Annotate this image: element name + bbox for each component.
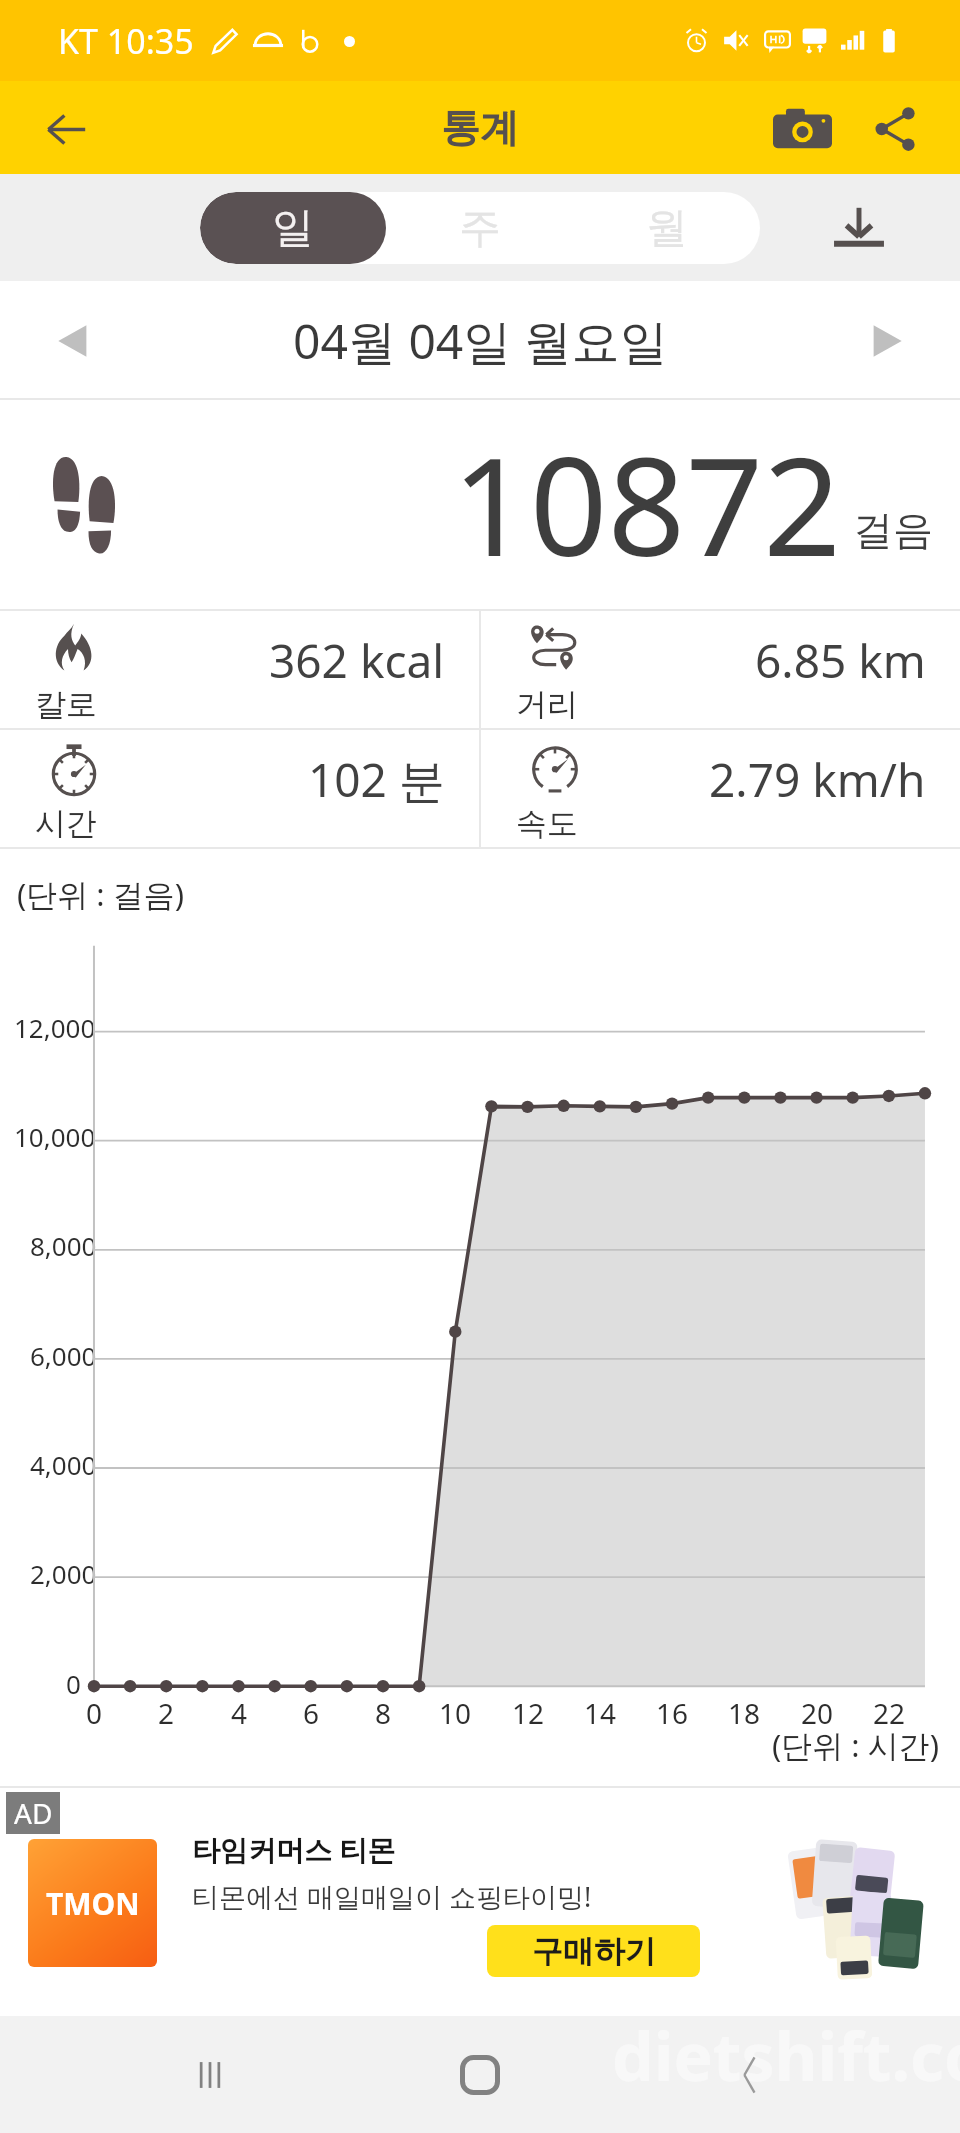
button[interactable]: Previous day (34, 303, 110, 379)
staticText: 12 (512, 1694, 545, 1732)
staticText: KT 10:35 (58, 18, 194, 64)
button[interactable]: Back (22, 85, 110, 173)
button[interactable]: 월 (573, 192, 760, 264)
staticText: 18 (728, 1694, 761, 1732)
staticText: 2 (158, 1694, 175, 1732)
staticText: 칼로 (35, 685, 97, 724)
staticText: 타임커머스 티몬 (192, 1830, 396, 1868)
staticText: dietshift.com (612, 2010, 960, 2100)
button[interactable]: Back (700, 2025, 800, 2125)
staticText: 걸음 (853, 505, 933, 555)
staticText: 4 (231, 1694, 248, 1732)
staticText: 거리 (516, 685, 578, 724)
button[interactable]: 칼로 (0, 611, 479, 728)
staticText: 22 (873, 1694, 906, 1732)
staticText: 10,000 (14, 1119, 96, 1154)
staticText: 10872 (452, 411, 841, 596)
button[interactable]: Home (430, 2025, 530, 2125)
staticText: 2,000 (30, 1556, 97, 1591)
button[interactable]: 구매하기 (487, 1925, 700, 1977)
staticText: 8,000 (30, 1228, 97, 1263)
staticText: 2.79 km/h (709, 748, 926, 811)
staticText: 14 (584, 1694, 617, 1732)
button[interactable]: 거리 (481, 611, 960, 728)
staticText: 티몬에선 매일매일이 쇼핑타이밍! (192, 1878, 592, 1915)
staticText: 102 분 (308, 748, 445, 811)
staticText: 일 (272, 202, 314, 255)
staticText: 주 (459, 202, 501, 255)
button[interactable]: 일 (200, 192, 386, 264)
staticText: (단위 : 시간) (772, 1724, 940, 1766)
button[interactable]: Next day (850, 303, 926, 379)
staticText: (단위 : 걸음) (17, 873, 185, 915)
staticText: 04월 04일 월요일 (293, 308, 668, 374)
staticText: 8 (375, 1694, 392, 1732)
staticText: 6.85 km (755, 629, 926, 692)
staticText: 20 (801, 1694, 834, 1732)
button[interactable]: Recents (160, 2025, 260, 2125)
staticText: 구매하기 (532, 1932, 656, 1971)
button[interactable]: Download (815, 183, 903, 271)
staticText: 속도 (516, 804, 578, 843)
staticText: 10 (439, 1694, 472, 1732)
staticText: 6,000 (30, 1338, 97, 1373)
staticText: 6 (303, 1694, 320, 1732)
staticText: TMON (46, 1883, 140, 1924)
staticText: 통계 (441, 103, 519, 152)
button[interactable]: 주 (386, 192, 573, 264)
button[interactable]: Capture (758, 85, 846, 173)
staticText: 월 (646, 202, 688, 255)
button[interactable]: 시간 (0, 730, 479, 847)
staticText: 시간 (35, 804, 97, 843)
button[interactable]: Share (851, 85, 939, 173)
staticText: 0 (86, 1694, 103, 1732)
button[interactable]: 속도 (481, 730, 960, 847)
staticText: 362 kcal (269, 629, 445, 692)
staticText: AD (14, 1794, 53, 1832)
staticText: 4,000 (30, 1447, 97, 1482)
staticText: 0 (66, 1666, 81, 1701)
staticText: 16 (656, 1694, 689, 1732)
staticText: 12,000 (14, 1010, 96, 1045)
